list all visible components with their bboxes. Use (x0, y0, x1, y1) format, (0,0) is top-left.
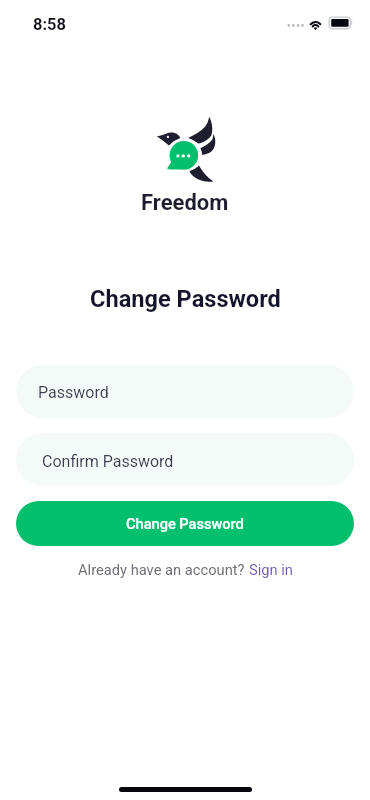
button[interactable]: Confirm Password (16, 433, 354, 486)
staticText: Change Password (90, 285, 281, 313)
button[interactable]: Change Password (16, 501, 354, 546)
staticText: 8:58 (33, 15, 67, 34)
button[interactable]: Sign in (249, 561, 293, 578)
staticText: Change Password (126, 515, 244, 532)
button[interactable]: Password (16, 365, 354, 418)
staticText: Sign in (249, 561, 293, 578)
staticText: Confirm Password (42, 452, 174, 471)
staticText: Password (38, 383, 109, 402)
staticText: Freedom (141, 190, 229, 216)
staticText: Already have an account? (78, 561, 249, 578)
